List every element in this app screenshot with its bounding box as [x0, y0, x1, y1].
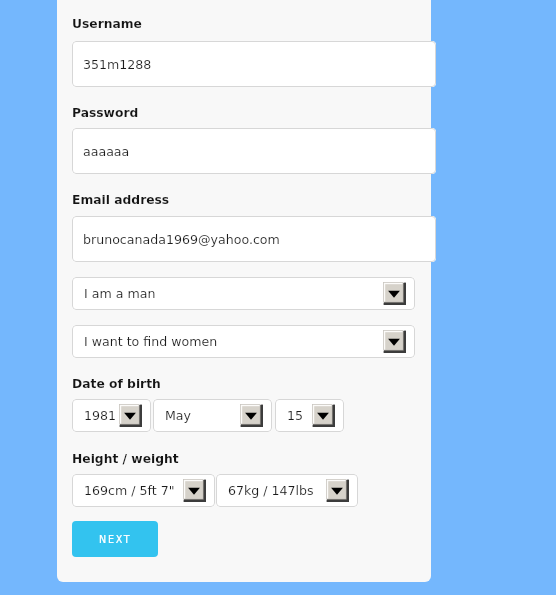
button[interactable]: I am a man: [72, 277, 415, 310]
staticText: I want to find women: [84, 334, 218, 349]
button[interactable]: aaaaaa: [72, 128, 436, 174]
button[interactable]: 351m1288: [72, 41, 436, 87]
other: Open list: [383, 330, 406, 353]
staticText: Height / weight: [72, 452, 179, 466]
other: Open list: [383, 282, 406, 305]
staticText: 169cm / 5ft 7": [84, 483, 175, 498]
staticText: 15: [287, 408, 304, 423]
staticText: Email address: [72, 193, 170, 207]
button[interactable]: brunocanada1969@yahoo.com: [72, 216, 436, 262]
button[interactable]: 1981: [72, 399, 151, 432]
other: Open list: [183, 479, 206, 502]
staticText: I am a man: [84, 286, 156, 301]
button[interactable]: 67kg / 147lbs: [216, 474, 358, 507]
staticText: NEXT: [99, 534, 132, 545]
staticText: 1981: [84, 408, 117, 423]
button[interactable]: May: [153, 399, 272, 432]
other: Open list: [119, 404, 142, 427]
staticText: May: [165, 408, 192, 423]
other: Open list: [240, 404, 263, 427]
button[interactable]: I want to find women: [72, 325, 415, 358]
other: Open list: [326, 479, 349, 502]
staticText: brunocanada1969@yahoo.com: [83, 232, 280, 247]
staticText: Password: [72, 106, 139, 120]
staticText: aaaaaa: [83, 144, 130, 159]
button[interactable]: 169cm / 5ft 7": [72, 474, 215, 507]
staticText: Date of birth: [72, 377, 161, 391]
button[interactable]: NEXT: [72, 521, 158, 557]
staticText: 67kg / 147lbs: [228, 483, 314, 498]
staticText: Username: [72, 17, 142, 31]
other: Open list: [312, 404, 335, 427]
staticText: 351m1288: [83, 57, 152, 72]
button[interactable]: 15: [275, 399, 344, 432]
